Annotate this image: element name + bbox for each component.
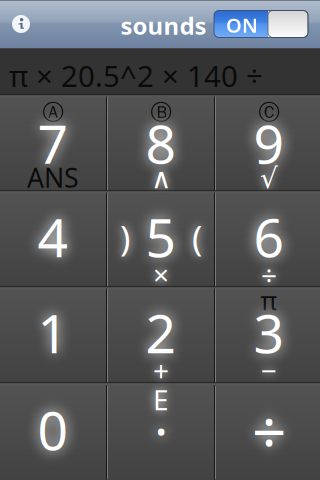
- button[interactable]: 9, square root: [216, 96, 320, 190]
- button[interactable]: Info: [0, 1, 42, 47]
- button[interactable]: 0: [0, 384, 106, 480]
- staticText: −: [261, 352, 277, 389]
- staticText: ÷: [261, 256, 277, 293]
- staticText: √: [260, 163, 278, 194]
- staticText: E: [153, 381, 169, 418]
- staticText: π: [260, 284, 277, 317]
- staticText: 6: [253, 201, 284, 272]
- button[interactable]: 4: [0, 192, 106, 286]
- staticText: ): [120, 214, 130, 260]
- button[interactable]: 7, answer: [0, 96, 106, 190]
- button[interactable]: 1: [0, 288, 106, 382]
- button[interactable]: 6, divide: [216, 192, 320, 286]
- staticText: ANS: [27, 160, 79, 195]
- staticText: 5: [145, 201, 176, 272]
- staticText: 7: [37, 108, 68, 178]
- staticText: sounds: [120, 10, 206, 41]
- staticText: (: [192, 214, 202, 260]
- staticText: Ⓒ: [258, 99, 279, 126]
- staticText: 9: [253, 108, 284, 178]
- staticText: ×: [153, 256, 169, 293]
- staticText: +: [153, 352, 169, 389]
- staticText: ÷: [252, 391, 286, 470]
- staticText: Ⓐ: [42, 99, 63, 126]
- staticText: 0: [37, 394, 68, 465]
- staticText: 1: [37, 297, 68, 368]
- staticText: ∧: [151, 163, 171, 194]
- staticText: 3: [253, 297, 284, 368]
- staticText: 8: [145, 108, 176, 178]
- button[interactable]: 8, power: [108, 96, 214, 190]
- button[interactable]: divide: [216, 384, 320, 480]
- staticText: 4: [37, 201, 68, 272]
- staticText: ON: [226, 12, 258, 38]
- button[interactable]: 2, plus: [108, 288, 214, 382]
- button[interactable]: Sounds, On: [214, 10, 308, 37]
- staticText: 2: [145, 297, 176, 368]
- button[interactable]: decimal point: [108, 384, 214, 480]
- staticText: Ⓑ: [150, 99, 171, 126]
- staticText: π × 20.5^2 × 140 ÷: [9, 56, 263, 95]
- button[interactable]: 3, minus: [216, 288, 320, 382]
- staticText: ·: [154, 395, 168, 465]
- button[interactable]: 5, multiply: [108, 192, 214, 286]
